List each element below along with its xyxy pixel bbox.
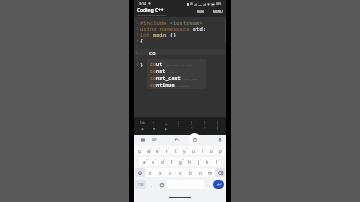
button[interactable]: i bbox=[198, 146, 207, 155]
button[interactable]: y bbox=[180, 146, 189, 155]
staticText: e bbox=[156, 148, 159, 154]
button[interactable]: l bbox=[212, 157, 221, 166]
button[interactable]: j bbox=[194, 157, 203, 166]
button[interactable]: Undo bbox=[175, 138, 179, 142]
staticText: #include <iostream> bbox=[140, 19, 203, 25]
staticText: LTE bbox=[198, 3, 202, 6]
staticText: n bbox=[199, 170, 202, 176]
button[interactable]: Toolbar bbox=[141, 138, 145, 142]
button[interactable]: r bbox=[162, 146, 171, 155]
button[interactable]: q bbox=[135, 146, 144, 155]
button[interactable]: Shift bbox=[135, 168, 145, 177]
button[interactable]: ▶ bbox=[160, 126, 172, 130]
staticText: + bbox=[200, 158, 202, 161]
button[interactable]: > bbox=[198, 126, 211, 130]
button[interactable]: ▼ bbox=[148, 126, 160, 130]
button[interactable]: < bbox=[185, 126, 198, 130]
staticText: @ bbox=[146, 158, 148, 161]
staticText: " bbox=[178, 126, 180, 130]
staticText: 4 bbox=[168, 147, 170, 150]
button[interactable]: e bbox=[153, 146, 162, 155]
button[interactable]: t bbox=[171, 146, 180, 155]
button[interactable]: RUN bbox=[196, 9, 205, 15]
button[interactable]: . bbox=[204, 180, 212, 189]
button[interactable]: const_cast bbox=[150, 75, 206, 82]
button[interactable]: paste bbox=[192, 138, 200, 142]
staticText: 3 bbox=[159, 147, 161, 150]
staticText: 7 bbox=[195, 147, 197, 150]
staticText: 8 bbox=[204, 147, 206, 150]
button[interactable]: z bbox=[145, 168, 155, 177]
staticText: 84% bbox=[216, 2, 222, 6]
staticText: 6 bbox=[136, 50, 138, 54]
button[interactable]: b bbox=[185, 168, 195, 177]
staticText: . bbox=[207, 182, 209, 187]
button[interactable]: ] bbox=[211, 126, 224, 130]
staticText: x bbox=[159, 170, 162, 176]
staticText: → bbox=[165, 122, 168, 125]
staticText: GIF bbox=[152, 138, 157, 142]
staticText: 7 bbox=[136, 56, 138, 60]
button[interactable]: m bbox=[205, 168, 215, 177]
staticText: q bbox=[138, 148, 141, 154]
button[interactable]: MENU bbox=[212, 9, 224, 15]
staticText: cout bbox=[150, 61, 163, 68]
button[interactable]: Emoji keyboard bbox=[189, 133, 200, 144]
button[interactable]: → bbox=[160, 121, 172, 125]
staticText: - bbox=[192, 158, 193, 161]
button[interactable]: c bbox=[165, 168, 175, 177]
staticText: ▶ bbox=[165, 127, 168, 130]
button[interactable]: Enter bbox=[213, 180, 224, 189]
staticText: 8 bbox=[136, 62, 138, 66]
staticText: f bbox=[171, 159, 173, 165]
staticText: const_cast bbox=[150, 75, 181, 82]
staticText: g bbox=[179, 159, 182, 165]
staticText: s bbox=[152, 159, 155, 165]
button[interactable]: } bbox=[198, 121, 211, 125]
button[interactable]: s bbox=[149, 157, 158, 166]
button[interactable]: k bbox=[203, 157, 212, 166]
staticText: m bbox=[208, 170, 213, 176]
button[interactable]: Backspace bbox=[215, 168, 225, 177]
button[interactable]: f bbox=[167, 157, 176, 166]
button[interactable]: Voice input bbox=[218, 138, 222, 142]
button[interactable]: h bbox=[185, 157, 194, 166]
button[interactable]: v bbox=[175, 168, 185, 177]
button[interactable]: ◀ bbox=[136, 126, 148, 130]
button[interactable]: w bbox=[144, 146, 153, 155]
staticText: 6 bbox=[186, 147, 188, 150]
button[interactable]: p bbox=[216, 146, 225, 155]
staticText: t bbox=[175, 148, 177, 154]
button[interactable]: • bbox=[148, 121, 160, 125]
button[interactable]: ?123 bbox=[135, 180, 146, 189]
button[interactable]: n bbox=[195, 168, 205, 177]
button[interactable]: const bbox=[150, 68, 206, 75]
button[interactable]: | bbox=[172, 121, 185, 125]
button[interactable]: , bbox=[146, 180, 157, 189]
button[interactable]: g bbox=[176, 157, 185, 166]
button[interactable]: o bbox=[207, 146, 216, 155]
button[interactable]: u bbox=[189, 146, 198, 155]
button[interactable]: Emoji bbox=[157, 180, 167, 189]
button[interactable]: a bbox=[139, 157, 149, 166]
staticText: paste bbox=[192, 138, 200, 142]
staticText: ) bbox=[219, 158, 220, 161]
button[interactable]: Tab bbox=[136, 121, 148, 125]
staticText: 2 bbox=[150, 147, 152, 150]
button[interactable]: " bbox=[172, 126, 185, 130]
staticText: 5 bbox=[177, 147, 179, 150]
button[interactable]: x bbox=[155, 168, 165, 177]
button[interactable]: continue bbox=[150, 82, 206, 89]
staticText: u bbox=[192, 148, 195, 154]
staticText: b bbox=[189, 170, 192, 176]
button[interactable]: cout bbox=[150, 61, 206, 68]
button[interactable]: [ bbox=[211, 121, 224, 125]
button[interactable]: { bbox=[185, 121, 198, 125]
staticText: $ bbox=[164, 158, 166, 161]
staticText: ▼ bbox=[153, 127, 156, 130]
staticText: y bbox=[183, 148, 186, 154]
button[interactable]: GIF bbox=[152, 138, 157, 142]
staticText: 9 bbox=[213, 147, 215, 150]
button[interactable]: d bbox=[158, 157, 167, 166]
